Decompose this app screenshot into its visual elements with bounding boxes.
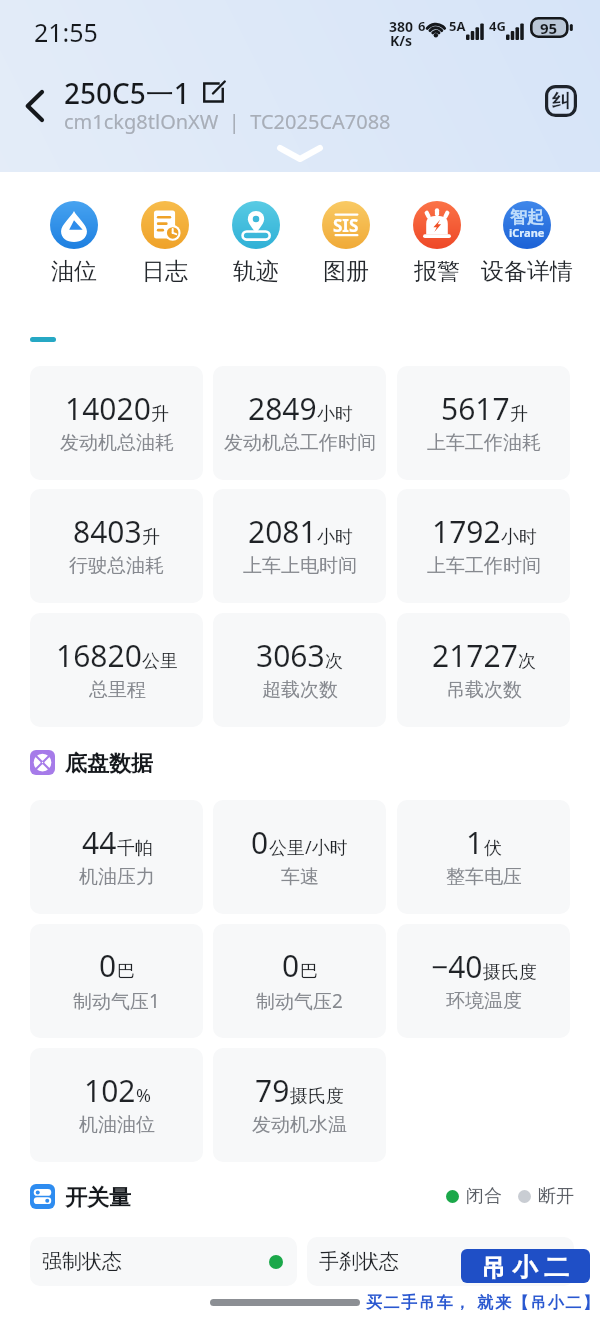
button[interactable]: 0 — [30, 924, 203, 1038]
staticText: 巴 — [300, 960, 318, 983]
staticText: 44 — [82, 822, 117, 863]
staticText: 公里/小时 — [269, 835, 348, 860]
staticText: 升 — [151, 403, 169, 426]
staticText: 2081 — [248, 511, 317, 552]
staticText: 0 — [251, 822, 269, 863]
button[interactable]: Edit name — [201, 80, 226, 105]
staticText: SIS — [333, 214, 359, 237]
staticText: 1792 — [432, 511, 501, 552]
button[interactable]: 纠错 — [545, 85, 577, 117]
staticText: 2849 — [248, 388, 317, 429]
button[interactable]: 21727 — [397, 613, 570, 727]
button[interactable]: 102 — [30, 1048, 203, 1162]
button[interactable]: 智起 — [467, 201, 587, 286]
staticText: 发动机水温 — [252, 1113, 347, 1137]
button[interactable]: 轨迹 — [196, 201, 316, 286]
staticText: 102 — [84, 1070, 136, 1111]
staticText: 0 — [282, 945, 300, 986]
staticText: iCrane — [509, 225, 545, 240]
staticText: 21:55 — [34, 15, 98, 49]
button[interactable]: 强制状态 — [30, 1237, 297, 1286]
staticText: −40 — [431, 946, 483, 987]
staticText: 95 — [540, 18, 558, 38]
staticText: 摄氏度 — [290, 1085, 344, 1108]
staticText: 手刹状态 — [319, 1249, 399, 1274]
staticText: 5617 — [441, 388, 510, 429]
button[interactable]: 79 — [213, 1048, 386, 1162]
staticText: 升 — [510, 403, 528, 426]
staticText: 伏 — [484, 837, 502, 860]
button[interactable]: Back — [12, 80, 56, 124]
staticText: 总里程 — [89, 678, 146, 702]
staticText: 次 — [518, 650, 536, 673]
staticText: 21727 — [432, 635, 518, 676]
button[interactable]: 0 — [213, 800, 386, 914]
staticText: 吊 小 二 — [481, 1249, 570, 1283]
staticText: 强制状态 — [42, 1249, 122, 1274]
button[interactable]: 2849 — [213, 366, 386, 480]
staticText: 上车工作时间 — [427, 554, 541, 578]
staticText: 发动机总工作时间 — [224, 431, 376, 455]
button[interactable]: 0 — [213, 924, 386, 1038]
button[interactable]: 1 — [397, 800, 570, 914]
button[interactable]: 日志 — [105, 201, 225, 286]
staticText: 8403 — [73, 511, 142, 552]
button[interactable]: 14020 — [30, 366, 203, 480]
staticText: % — [136, 1083, 151, 1108]
button[interactable]: 5617 — [397, 366, 570, 480]
button[interactable]: 2081 — [213, 489, 386, 603]
button[interactable]: 手刹状态 — [307, 1237, 574, 1286]
button[interactable]: 16820 — [30, 613, 203, 727]
staticText: 机油油位 — [79, 1113, 155, 1137]
button[interactable]: 报警 — [377, 201, 497, 286]
staticText: 开关量 — [65, 1184, 131, 1209]
staticText: 小时 — [317, 403, 353, 426]
staticText: 超载次数 — [262, 678, 338, 702]
staticText: 小时 — [317, 526, 353, 549]
staticText: 公里 — [142, 650, 178, 673]
staticText: 日志 — [142, 257, 188, 286]
staticText: 环境温度 — [446, 989, 522, 1013]
staticText: 轨迹 — [233, 257, 279, 286]
staticText: 巴 — [117, 960, 135, 983]
staticText: 上车上电时间 — [243, 554, 357, 578]
staticText: 14020 — [65, 388, 151, 429]
staticText: cm1ckg8tlOnXW | TC2025CA7088 — [64, 108, 391, 135]
staticText: 千帕 — [117, 837, 153, 860]
staticText: 发动机总油耗 — [60, 431, 174, 455]
staticText: 制动气压1 — [73, 988, 160, 1014]
button[interactable]: 油位 — [14, 201, 134, 286]
button[interactable]: 1792 — [397, 489, 570, 603]
staticText: 79 — [255, 1070, 290, 1111]
staticText: 机油压力 — [79, 865, 155, 889]
staticText: 4G — [489, 17, 506, 35]
staticText: K/s — [390, 31, 413, 50]
staticText: 纠 — [552, 90, 570, 113]
staticText: 摄氏度 — [483, 961, 537, 984]
staticText: 6 — [418, 17, 426, 35]
staticText: 次 — [325, 650, 343, 673]
button[interactable]: 3063 — [213, 613, 386, 727]
staticText: 底盘数据 — [65, 750, 153, 775]
staticText: 买二手吊车， 就来【吊小二】 — [366, 1291, 600, 1313]
staticText: 设备详情 — [481, 257, 573, 286]
staticText: 图册 — [323, 257, 369, 286]
button[interactable]: SIS — [286, 201, 406, 286]
staticText: 1 — [466, 822, 484, 863]
staticText: 车速 — [281, 865, 319, 889]
button[interactable]: 8403 — [30, 489, 203, 603]
staticText: 小时 — [501, 526, 537, 549]
staticText: 250C5一1 — [64, 74, 190, 112]
staticText: 16820 — [56, 635, 142, 676]
staticText: 3063 — [256, 635, 325, 676]
staticText: 升 — [142, 526, 160, 549]
staticText: 闭合 — [466, 1185, 502, 1208]
staticText: 上车工作油耗 — [427, 431, 541, 455]
staticText: 报警 — [414, 257, 460, 286]
staticText: 0 — [99, 945, 117, 986]
staticText: 5A — [449, 17, 466, 35]
button[interactable]: 44 — [30, 800, 203, 914]
staticText: 制动气压2 — [256, 988, 343, 1014]
button[interactable]: −40 — [397, 924, 570, 1038]
staticText: 380 — [389, 17, 414, 36]
